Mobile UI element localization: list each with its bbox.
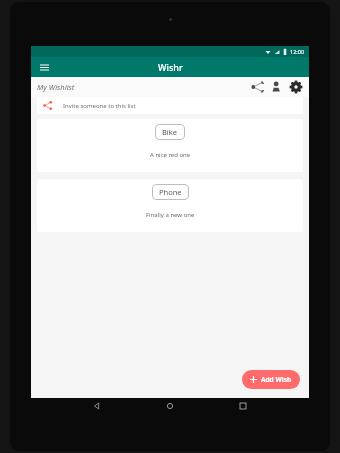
button[interactable]: Invite someone to this list: [37, 97, 303, 114]
button[interactable]: Back: [90, 399, 104, 413]
staticText: Finally a new one: [146, 211, 195, 219]
button[interactable]: Open navigation menu: [36, 59, 52, 75]
button[interactable]: Add person: [270, 80, 284, 94]
staticText: Invite someone to this list: [63, 102, 136, 110]
button[interactable]: Home: [163, 399, 177, 413]
button[interactable]: Share list: [251, 80, 265, 94]
staticText: Add Wish: [261, 375, 292, 384]
staticText: Phone: [159, 187, 182, 197]
staticText: Wishr: [158, 61, 183, 73]
staticText: My Wishlist: [37, 82, 251, 92]
button[interactable]: Settings: [289, 80, 303, 94]
button[interactable]: Bike: [37, 119, 303, 172]
staticText: Bike: [162, 127, 178, 137]
button[interactable]: Recent apps: [236, 399, 250, 413]
staticText: 12:00: [290, 48, 305, 55]
button[interactable]: Phone: [37, 179, 303, 232]
staticText: A nice red one: [150, 151, 191, 159]
button[interactable]: Add Wish: [242, 370, 300, 389]
